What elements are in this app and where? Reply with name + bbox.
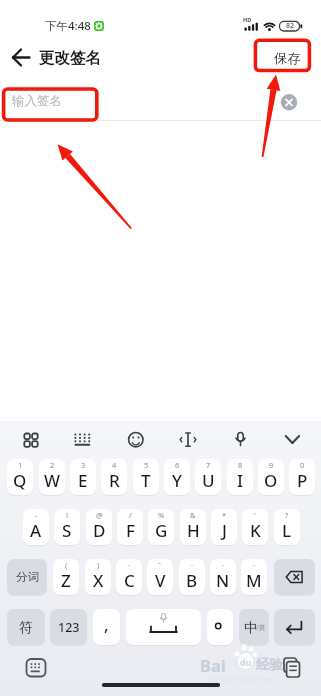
- staticText: /英: [256, 623, 266, 633]
- button[interactable]: [274, 609, 315, 645]
- staticText: S: [62, 519, 72, 542]
- staticText: N: [216, 569, 230, 592]
- staticText: Bai: [200, 654, 226, 676]
- staticText: ): [97, 560, 100, 570]
- staticText: ˇ: [158, 560, 162, 570]
- staticText: 5: [144, 460, 149, 470]
- button[interactable]: *: [211, 509, 237, 545]
- staticText: V: [155, 569, 166, 592]
- staticText: X: [93, 569, 104, 592]
- staticText: &: [190, 510, 196, 520]
- staticText: (: [65, 560, 68, 570]
- staticText: ·: [191, 560, 194, 570]
- button[interactable]: [278, 654, 306, 684]
- button[interactable]: [20, 652, 52, 684]
- button[interactable]: 分词: [7, 559, 47, 595]
- button[interactable]: [280, 424, 306, 456]
- button[interactable]: [274, 559, 315, 595]
- button[interactable]: (: [53, 559, 79, 595]
- button[interactable]: ): [85, 559, 111, 595]
- staticText: HD: [243, 16, 252, 23]
- staticText: jingyan.baidu.com: [207, 674, 277, 685]
- staticText: /: [129, 510, 132, 520]
- button[interactable]: 8: [227, 459, 253, 495]
- staticText: 输入签名: [12, 93, 62, 109]
- staticText: 更改签名: [39, 48, 101, 68]
- staticText: Q: [13, 469, 27, 492]
- button[interactable]: 7: [195, 459, 221, 495]
- button[interactable]: 2: [39, 459, 65, 495]
- button[interactable]: ': [242, 509, 268, 545]
- staticText: *: [222, 510, 227, 520]
- staticText: 9: [269, 460, 274, 470]
- button[interactable]: [6, 44, 36, 72]
- button[interactable]: [281, 94, 297, 110]
- staticText: !: [66, 510, 69, 520]
- staticText: @: [96, 510, 103, 520]
- staticText: 7: [206, 460, 211, 470]
- button[interactable]: !: [54, 509, 80, 545]
- button[interactable]: [69, 424, 95, 456]
- button[interactable]: 符: [7, 609, 45, 645]
- button[interactable]: 9: [258, 459, 284, 495]
- staticText: K: [250, 519, 261, 542]
- button[interactable]: /: [117, 509, 143, 545]
- button[interactable]: @: [86, 509, 112, 545]
- staticText: 4: [112, 460, 117, 470]
- button[interactable]: [18, 424, 44, 456]
- staticText: ': [254, 510, 256, 520]
- button[interactable]: [123, 424, 149, 456]
- staticText: 2: [50, 460, 55, 470]
- button[interactable]: ·: [210, 559, 236, 595]
- staticText: E: [78, 469, 88, 492]
- staticText: 保存: [274, 50, 301, 67]
- button[interactable]: [126, 609, 201, 645]
- button[interactable]: 3: [70, 459, 96, 495]
- staticText: 下午4:48: [45, 18, 91, 34]
- button[interactable]: [207, 609, 233, 645]
- staticText: U: [202, 469, 215, 492]
- button[interactable]: 输入签名: [8, 87, 258, 115]
- button[interactable]: [228, 424, 254, 456]
- button[interactable]: 1: [7, 459, 33, 495]
- staticText: T: [141, 469, 151, 492]
- staticText: G: [155, 519, 168, 542]
- staticText: 123: [58, 619, 80, 636]
- staticText: Z: [61, 569, 71, 592]
- staticText: J: [222, 519, 227, 542]
- button[interactable]: -: [23, 509, 49, 545]
- button[interactable]: ˇ: [147, 559, 173, 595]
- staticText: R: [109, 469, 120, 492]
- staticText: 8: [238, 460, 243, 470]
- staticText: ·: [253, 560, 256, 570]
- staticText: ,: [104, 613, 109, 636]
- button[interactable]: 4: [101, 459, 127, 495]
- staticText: -: [35, 510, 38, 520]
- button[interactable]: 5: [133, 459, 159, 495]
- button[interactable]: ·: [241, 559, 267, 595]
- staticText: ?: [285, 510, 289, 520]
- button[interactable]: 保存: [263, 44, 311, 72]
- staticText: 82: [286, 21, 295, 31]
- staticText: M: [246, 569, 262, 592]
- staticText: 3: [81, 460, 86, 470]
- button[interactable]: %: [148, 509, 174, 545]
- staticText: ·: [128, 560, 131, 570]
- staticText: 6: [175, 460, 180, 470]
- button[interactable]: ·: [179, 559, 205, 595]
- staticText: F: [126, 519, 135, 542]
- button[interactable]: 6: [164, 459, 190, 495]
- button[interactable]: &: [180, 509, 206, 545]
- button[interactable]: 123: [50, 609, 87, 645]
- staticText: Y: [172, 469, 182, 492]
- button[interactable]: [175, 424, 201, 456]
- staticText: 经验: [256, 656, 283, 673]
- button[interactable]: ,: [93, 609, 120, 645]
- button[interactable]: 中: [239, 609, 269, 645]
- button[interactable]: ?: [274, 509, 300, 545]
- button[interactable]: ·: [116, 559, 142, 595]
- staticText: I: [237, 469, 244, 492]
- staticText: ·: [222, 560, 225, 570]
- button[interactable]: 0: [289, 459, 315, 495]
- staticText: du: [240, 656, 252, 668]
